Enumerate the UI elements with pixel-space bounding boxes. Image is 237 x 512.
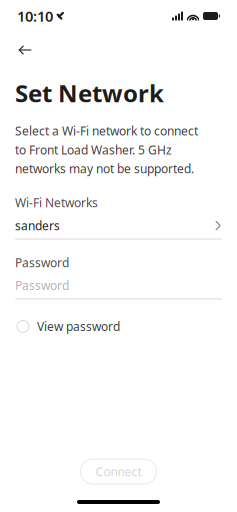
staticText: Wi-Fi Networks xyxy=(15,195,98,211)
staticText: Password xyxy=(15,277,69,293)
staticText: Password xyxy=(15,254,69,270)
staticText: View password xyxy=(37,318,120,334)
button[interactable]: Back xyxy=(8,35,42,65)
staticText: Set Network xyxy=(15,77,164,109)
staticText: sanders xyxy=(15,218,60,233)
button[interactable]: Connect xyxy=(80,459,156,484)
staticText: 10:10 xyxy=(17,6,53,26)
button[interactable]: Wi-Fi Networks xyxy=(0,195,237,240)
staticText: Connect xyxy=(95,463,141,479)
button[interactable]: View password xyxy=(0,313,237,339)
staticText: Select a Wi-Fi network to connect to Fro… xyxy=(15,123,198,177)
